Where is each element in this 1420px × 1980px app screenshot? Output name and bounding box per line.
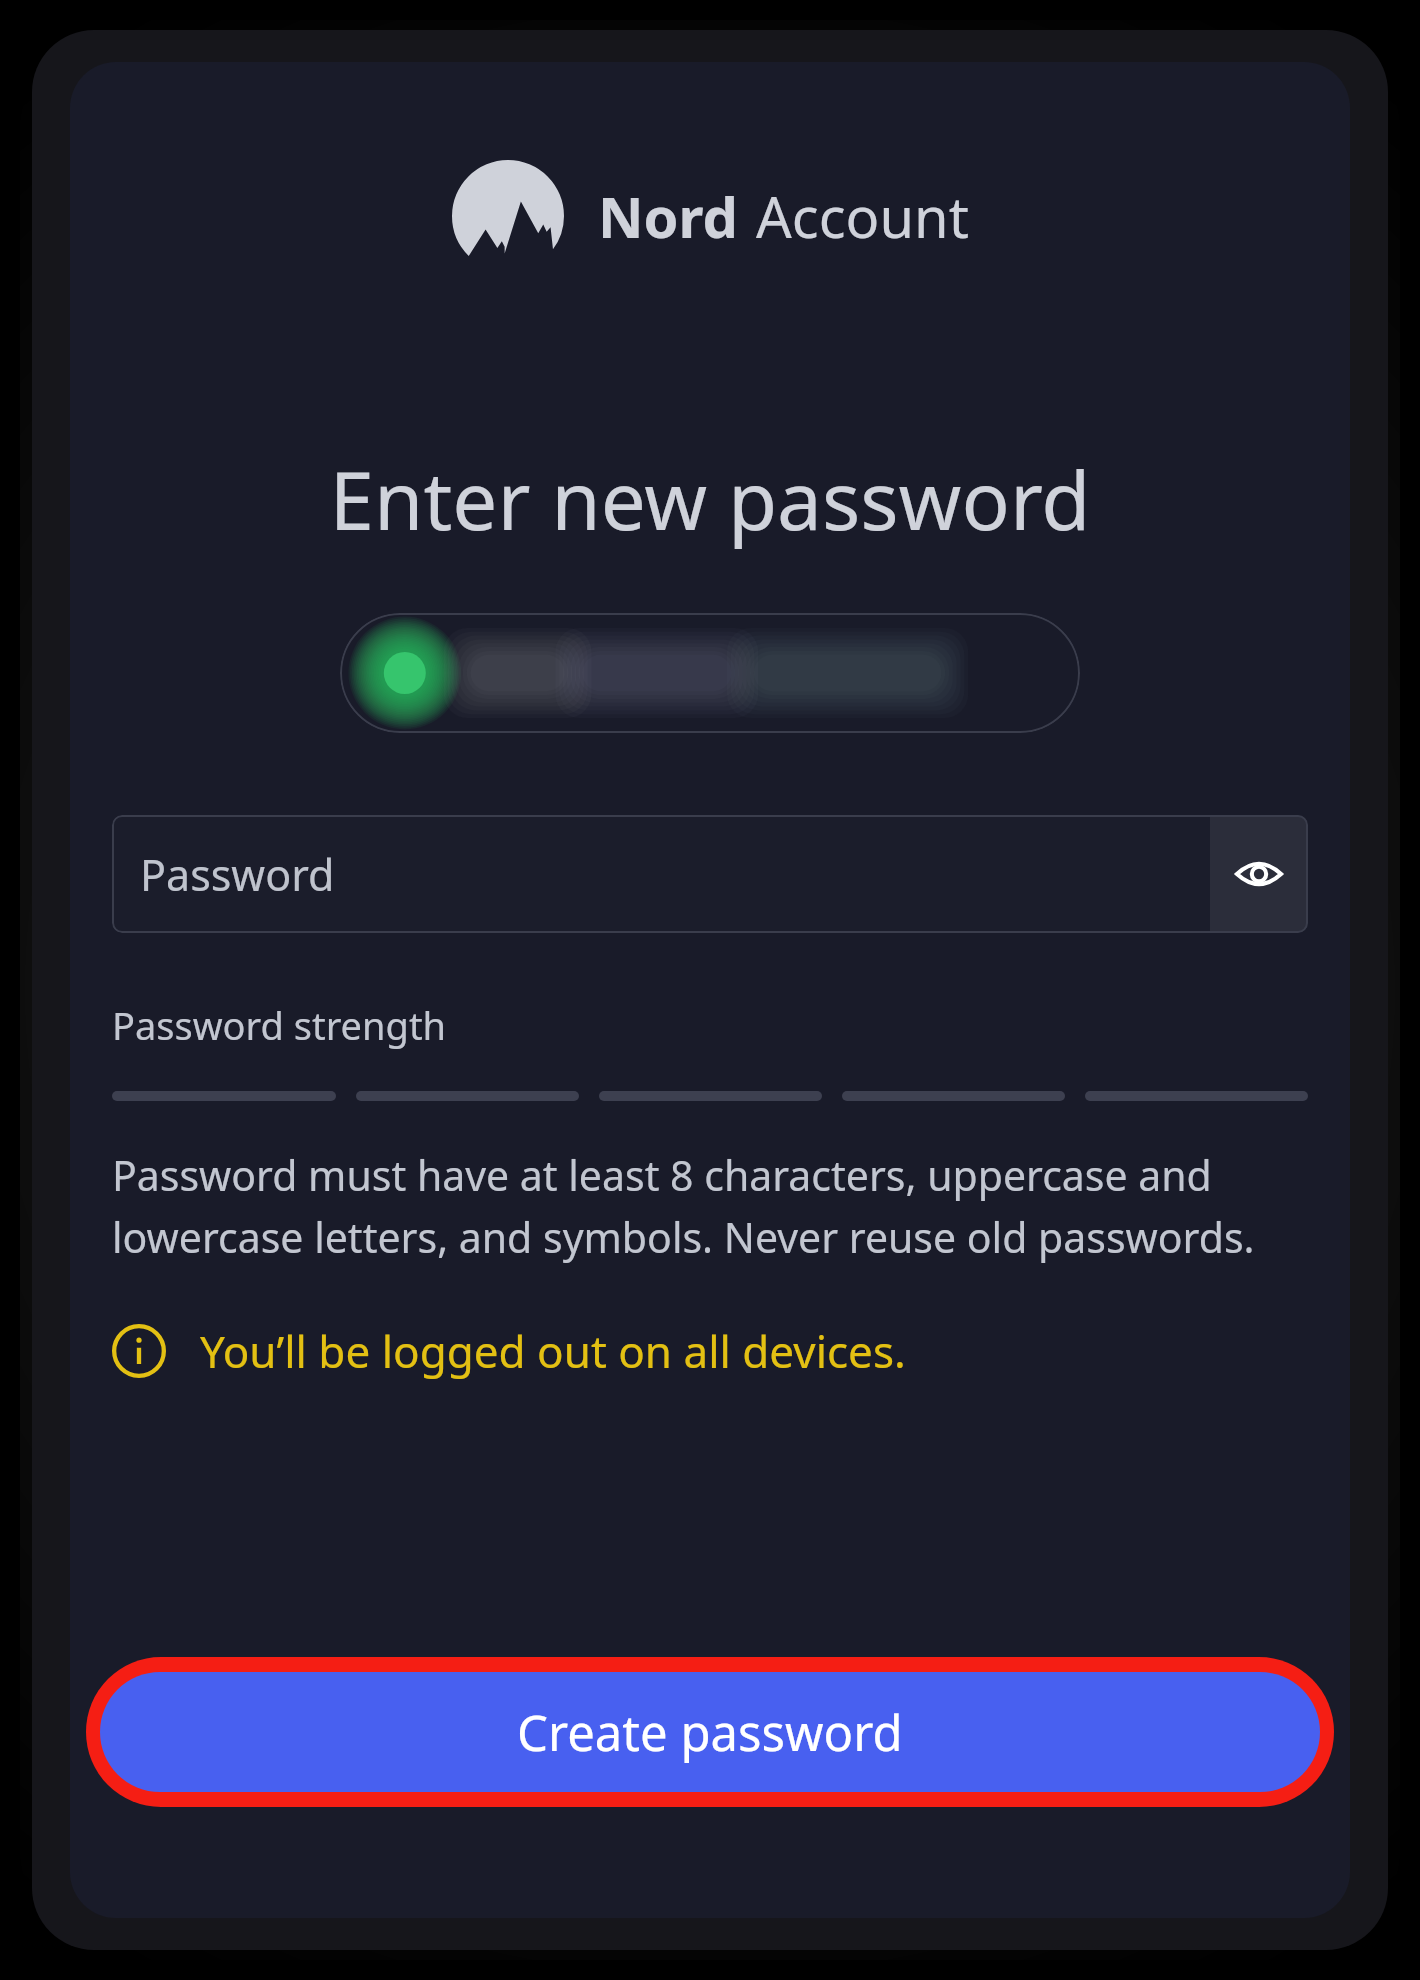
staticText: Password must have at least 8 characters… — [112, 1147, 1314, 1265]
staticText: Create password — [517, 1699, 903, 1766]
staticText: You’ll be logged out on all devices. — [200, 1321, 906, 1381]
button[interactable] — [340, 613, 1080, 733]
staticText: Enter new password — [329, 444, 1091, 553]
staticText: Password — [140, 845, 335, 904]
button[interactable]: Password — [112, 815, 1210, 933]
button[interactable]: Create password — [100, 1672, 1320, 1792]
button[interactable]: Show password — [1210, 815, 1308, 933]
staticText: Account — [756, 178, 969, 254]
staticText: Password strength — [112, 999, 447, 1051]
staticText: Nord — [598, 178, 738, 254]
